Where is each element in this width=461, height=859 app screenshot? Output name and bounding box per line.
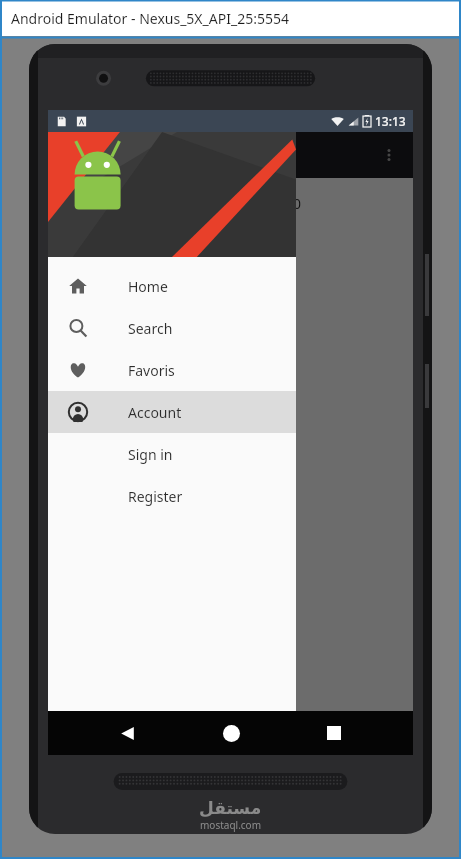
button[interactable]: Search: [48, 307, 296, 349]
staticText: Account: [128, 403, 182, 422]
button[interactable]: [48, 132, 296, 257]
button[interactable]: Recents: [310, 711, 358, 755]
button[interactable]: More options: [371, 137, 407, 173]
staticText: Tickets 0: [244, 194, 301, 213]
staticText: Home: [128, 277, 168, 296]
staticText: Register: [128, 487, 183, 506]
staticText: Search: [128, 319, 173, 338]
button[interactable]: Home: [48, 265, 296, 307]
button[interactable]: Back: [103, 711, 151, 755]
button[interactable]: Account: [48, 391, 296, 433]
staticText: 13:13: [375, 113, 406, 129]
staticText: Sign in: [128, 445, 173, 464]
staticText: مستقل: [199, 798, 262, 818]
staticText: mostaql.com: [200, 818, 262, 832]
button[interactable]: Favoris: [48, 349, 296, 391]
button[interactable]: Sign in: [48, 433, 296, 475]
button[interactable]: Home: [207, 711, 255, 755]
staticText: Favoris: [128, 361, 175, 380]
button[interactable]: Register: [48, 475, 296, 517]
staticText: Android Emulator - Nexus_5X_API_25:5554: [11, 9, 289, 28]
